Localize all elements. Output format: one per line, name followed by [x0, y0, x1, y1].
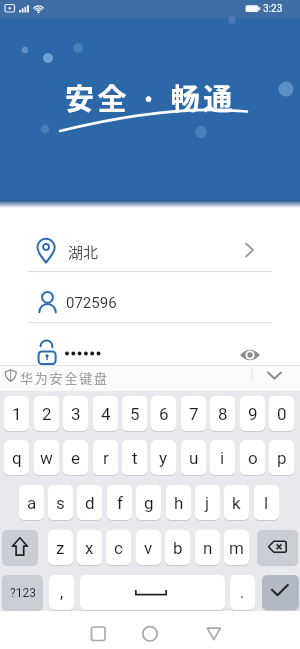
button[interactable]: a	[19, 485, 44, 520]
button[interactable]	[235, 343, 265, 366]
button[interactable]: x	[77, 530, 102, 565]
staticText: q	[12, 448, 22, 468]
button[interactable]: ?123	[2, 575, 43, 610]
button[interactable]	[190, 611, 238, 649]
button[interactable]: k	[224, 485, 249, 520]
staticText: 华为安全键盘	[20, 368, 109, 387]
button[interactable]: 2	[34, 396, 59, 431]
button[interactable]: g	[136, 485, 161, 520]
staticText: 7	[189, 404, 199, 424]
staticText: j	[205, 493, 210, 513]
staticText: l	[264, 493, 269, 513]
staticText: a	[27, 493, 37, 513]
staticText: e	[71, 448, 81, 468]
staticText: i	[220, 448, 225, 468]
button[interactable]	[0, 331, 300, 365]
button[interactable]: 072596	[0, 279, 300, 322]
staticText: m	[229, 538, 244, 558]
staticText: 8	[218, 404, 228, 424]
staticText: 6	[159, 404, 169, 424]
button[interactable]: n	[195, 530, 220, 565]
button[interactable]: s	[48, 485, 73, 520]
button[interactable]: m	[224, 530, 249, 565]
staticText: w	[40, 448, 53, 468]
staticText: g	[144, 493, 154, 513]
staticText: 4	[101, 404, 111, 424]
button[interactable]: e	[63, 440, 88, 475]
button[interactable]: l	[254, 485, 279, 520]
staticText: ?123	[10, 586, 36, 600]
staticText: d	[85, 493, 95, 513]
button[interactable]	[75, 611, 123, 649]
button[interactable]: 8	[210, 396, 235, 431]
staticText: c	[114, 538, 123, 558]
button[interactable]	[80, 575, 225, 610]
button[interactable]	[257, 530, 298, 565]
staticText: v	[144, 538, 153, 558]
staticText: 2	[42, 404, 52, 424]
staticText: t	[132, 448, 138, 468]
button[interactable]	[2, 530, 38, 565]
button[interactable]: 湖北	[0, 228, 300, 271]
staticText: n	[203, 538, 213, 558]
button[interactable]: b	[165, 530, 190, 565]
button[interactable]: p	[269, 440, 294, 475]
button[interactable]: z	[48, 530, 73, 565]
staticText: r	[103, 448, 109, 468]
button[interactable]: d	[77, 485, 102, 520]
button[interactable]: 4	[93, 396, 118, 431]
button[interactable]: h	[166, 485, 191, 520]
button[interactable]	[255, 366, 300, 391]
staticText: x	[85, 538, 94, 558]
button[interactable]: 3	[63, 396, 88, 431]
button[interactable]: 7	[181, 396, 206, 431]
button[interactable]	[126, 611, 174, 649]
staticText: b	[173, 538, 183, 558]
staticText: p	[277, 448, 287, 468]
button[interactable]: 6	[151, 396, 176, 431]
button[interactable]: 9	[240, 396, 265, 431]
button[interactable]: 5	[122, 396, 147, 431]
button[interactable]: i	[210, 440, 235, 475]
staticText: 3:23	[263, 3, 283, 15]
button[interactable]: t	[122, 440, 147, 475]
button[interactable]: c	[106, 530, 131, 565]
staticText: k	[232, 493, 241, 513]
button[interactable]: y	[151, 440, 176, 475]
staticText: 0	[277, 404, 287, 424]
button[interactable]: 1	[4, 396, 29, 431]
staticText: ,	[60, 583, 64, 602]
staticText: y	[159, 448, 168, 468]
staticText: 湖北	[68, 241, 99, 263]
button[interactable]: v	[136, 530, 161, 565]
button[interactable]: o	[240, 440, 265, 475]
staticText: z	[56, 538, 65, 558]
staticText: o	[248, 448, 258, 468]
button[interactable]: r	[93, 440, 118, 475]
staticText: 072596	[66, 294, 117, 312]
button[interactable]: q	[4, 440, 29, 475]
staticText: u	[189, 448, 199, 468]
button[interactable]: 0	[269, 396, 294, 431]
staticText: 5	[130, 404, 140, 424]
staticText: 1	[12, 404, 22, 424]
button[interactable]: u	[181, 440, 206, 475]
button[interactable]	[262, 575, 299, 610]
staticText: 安全 · 畅通	[65, 76, 236, 116]
staticText: 9	[248, 404, 258, 424]
staticText: 3	[71, 404, 81, 424]
button[interactable]: j	[195, 485, 220, 520]
staticText: f	[117, 493, 123, 513]
staticText: s	[56, 493, 65, 513]
button[interactable]: f	[107, 485, 132, 520]
staticText: h	[174, 493, 184, 513]
button[interactable]: w	[34, 440, 59, 475]
button[interactable]: .	[230, 575, 255, 610]
staticText: .	[240, 583, 245, 602]
button[interactable]: ,	[49, 575, 74, 610]
